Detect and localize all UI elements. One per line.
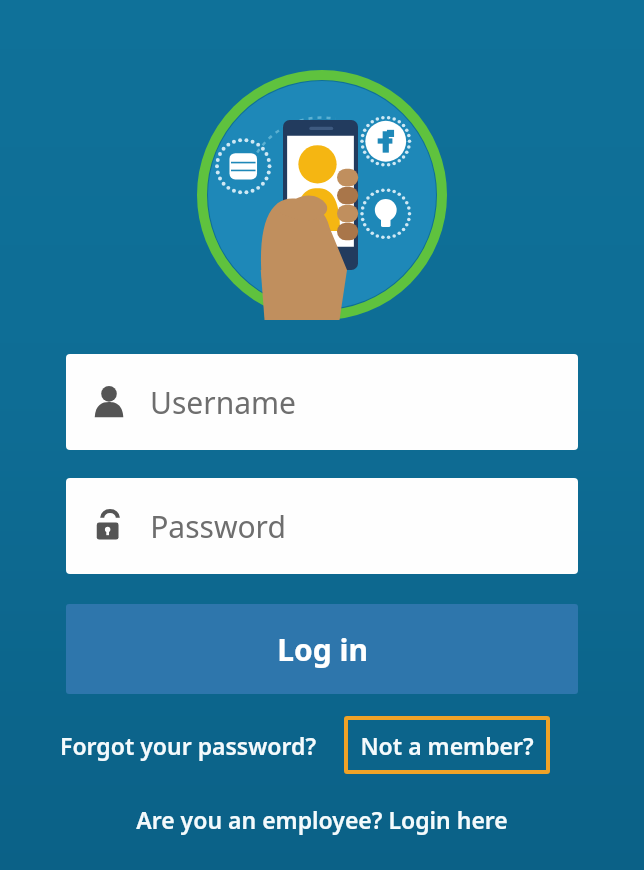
staticText: Password	[150, 506, 286, 547]
button[interactable]: Not a member?	[344, 716, 550, 774]
button[interactable]: Password	[66, 478, 578, 574]
button[interactable]: Are you an employee? Login here	[128, 798, 516, 841]
staticText: Forgot your password?	[60, 730, 316, 761]
staticText: Are you an employee? Login here	[136, 804, 508, 835]
button[interactable]: Username	[66, 354, 578, 450]
staticText: Username	[150, 382, 296, 423]
staticText: Log in	[277, 629, 368, 670]
button[interactable]: Forgot your password?	[58, 722, 318, 769]
button[interactable]: Log in	[66, 604, 578, 694]
staticText: Not a member?	[360, 730, 534, 761]
